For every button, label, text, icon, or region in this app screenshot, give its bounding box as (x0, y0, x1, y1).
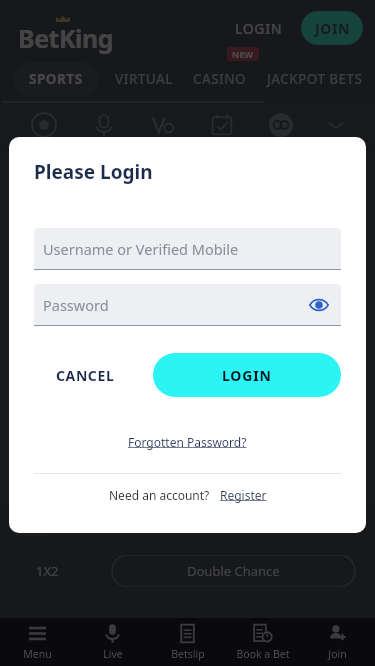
staticText: SPORTS (29, 70, 83, 88)
staticText: JOIN (315, 19, 350, 38)
button[interactable]: Menu (0, 618, 75, 666)
staticText: Username or Verified Mobile (43, 239, 239, 259)
staticText: Book a Bet (236, 647, 290, 661)
staticText: BetKing (18, 21, 114, 55)
button[interactable]: Sport 2 (148, 110, 178, 140)
button[interactable] (12, 509, 52, 537)
button[interactable] (96, 509, 132, 537)
button[interactable]: LOGIN (153, 353, 341, 397)
staticText: LOGIN (235, 19, 283, 38)
staticText: Please Login (34, 159, 153, 185)
button[interactable]: Join (300, 618, 375, 666)
staticText: Betslip (171, 647, 205, 661)
button[interactable]: Sport 1 (89, 110, 119, 140)
button[interactable]: Sport 4 (266, 110, 296, 140)
staticText: Double Chance (187, 562, 280, 580)
button[interactable]: Betslip (150, 618, 225, 666)
button[interactable]: JOIN (301, 11, 363, 45)
button[interactable]: Forgotten Password? (124, 430, 251, 454)
button[interactable]: Password (34, 284, 341, 326)
staticText: Join (328, 647, 347, 661)
staticText: CASINO (193, 70, 247, 88)
button[interactable]: CANCEL (34, 354, 137, 397)
staticText: LOGIN (222, 366, 272, 385)
button[interactable]: Show password (306, 292, 332, 318)
staticText: Register (220, 487, 267, 503)
staticText: Password (43, 295, 109, 315)
button[interactable]: Sport 3 (207, 110, 237, 140)
staticText: 1X2 (36, 562, 59, 580)
button[interactable]: LOGIN (227, 13, 291, 44)
button[interactable]: VIRTUAL (113, 62, 175, 96)
button[interactable] (56, 509, 92, 537)
button[interactable]: SPORTS (13, 62, 99, 96)
staticText: Need an account? (109, 487, 210, 503)
button[interactable]: Double Chance (92, 555, 375, 587)
staticText: VIRTUAL (115, 70, 173, 88)
staticText: NEW (232, 48, 254, 60)
button[interactable]: Username or Verified Mobile (34, 228, 341, 270)
button[interactable]: Live (75, 618, 150, 666)
staticText: Forgotten Password? (128, 434, 247, 450)
button[interactable]: JACKPOT BETS (265, 62, 365, 96)
staticText: Menu (23, 647, 52, 661)
button[interactable]: 1X2 (12, 555, 83, 587)
button[interactable]: Register (220, 487, 267, 503)
button[interactable]: Sport 0 (29, 110, 59, 140)
staticText: CANCEL (56, 366, 115, 385)
staticText: Live (103, 647, 123, 661)
button[interactable]: Book a Bet (225, 618, 300, 666)
staticText: JACKPOT BETS (267, 70, 363, 88)
button[interactable]: CASINO (191, 62, 249, 96)
button[interactable]: BetKing home (18, 11, 114, 45)
